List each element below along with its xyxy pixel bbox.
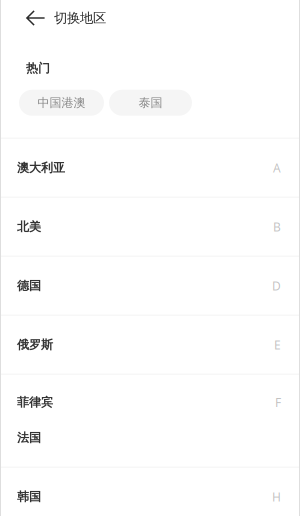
button[interactable]: 韩国	[0, 468, 300, 516]
staticText: 俄罗斯	[17, 337, 53, 352]
button[interactable]: 菲律宾	[0, 375, 300, 430]
button[interactable]: 法国	[0, 430, 300, 467]
staticText: 热门	[26, 61, 50, 76]
staticText: H	[272, 489, 281, 505]
button[interactable]: Back	[0, 0, 54, 36]
staticText: A	[273, 160, 281, 176]
staticText: 菲律宾	[17, 395, 53, 410]
button[interactable]: 北美	[0, 198, 300, 256]
button[interactable]: 俄罗斯	[0, 316, 300, 374]
staticText: 泰国	[138, 95, 162, 110]
button[interactable]: 中国港澳	[19, 90, 104, 116]
staticText: 澳大利亚	[17, 160, 65, 175]
staticText: 德国	[17, 278, 41, 293]
staticText: 中国港澳	[37, 95, 85, 110]
staticText: 切换地区	[54, 10, 106, 26]
button[interactable]: 德国	[0, 257, 300, 315]
button[interactable]: 澳大利亚	[0, 139, 300, 197]
staticText: B	[273, 219, 281, 235]
staticText: D	[272, 278, 281, 294]
staticText: 韩国	[17, 489, 41, 504]
staticText: 北美	[17, 219, 41, 234]
staticText: 法国	[17, 430, 41, 445]
staticText: F	[275, 394, 281, 410]
button[interactable]: 泰国	[109, 90, 192, 116]
staticText: E	[274, 337, 281, 353]
